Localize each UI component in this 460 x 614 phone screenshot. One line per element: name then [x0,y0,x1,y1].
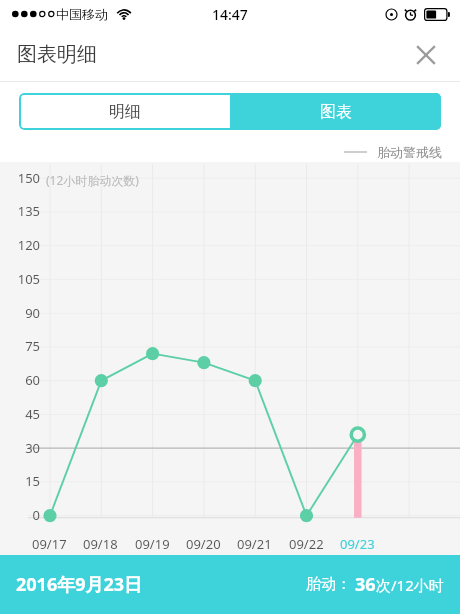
staticText: 明细 [109,102,141,122]
staticText: 09/21 [237,535,272,553]
staticText: 胎动： [306,575,351,594]
staticText: 09/17 [32,535,67,553]
staticText: 120 [8,236,40,254]
staticText: 15 [8,472,40,490]
staticText: 36 [355,572,376,597]
staticText: 09/20 [186,535,221,553]
staticText: 2016年9月23日 [16,572,143,597]
staticText: (12小时胎动次数) [46,172,139,188]
staticText: 09/22 [289,535,324,553]
staticText: 图表 [320,102,352,122]
staticText: 75 [8,337,40,355]
staticText: 45 [8,405,40,423]
staticText: 150 [8,169,40,187]
staticText: 105 [8,270,40,288]
staticText: 90 [8,304,40,322]
staticText: 30 [8,439,40,457]
staticText: 0 [8,506,40,524]
staticText: 60 [8,371,40,389]
button[interactable]: Close [405,34,447,76]
button[interactable]: 明细 [19,93,230,130]
staticText: 图表明细 [17,42,97,67]
staticText: 135 [8,202,40,220]
button[interactable]: 图表 [230,93,441,130]
staticText: 09/18 [83,535,118,553]
staticText: 09/19 [135,535,170,553]
staticText: 09/23 [340,535,375,553]
staticText: 中国移动 [56,6,108,22]
staticText: 胎动警戒线 [377,144,442,160]
staticText: 14:47 [212,5,248,24]
staticText: 次/12小时 [376,575,444,595]
